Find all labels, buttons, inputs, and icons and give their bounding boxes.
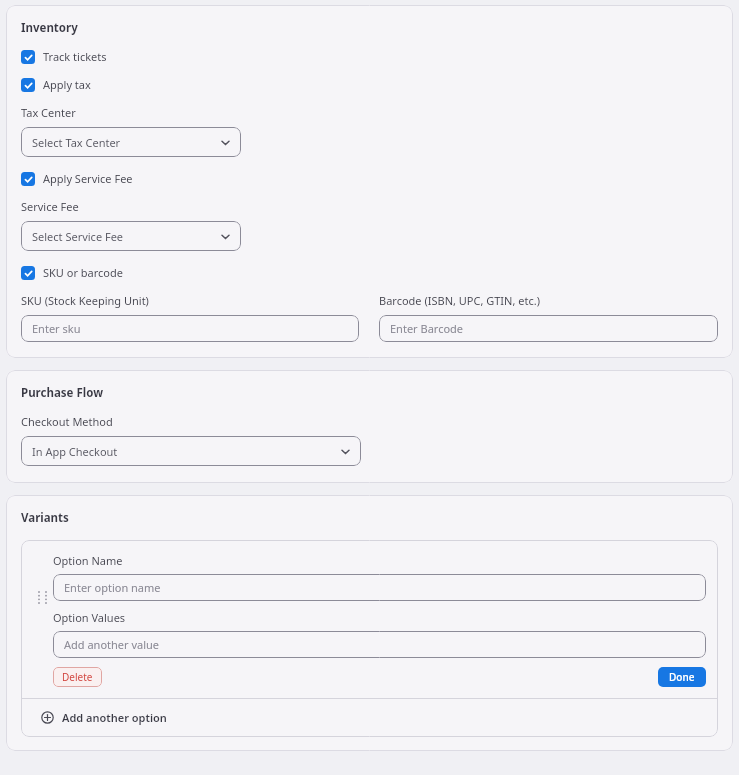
button[interactable]: Apply tax — [21, 75, 91, 94]
staticText: Barcode (ISBN, UPC, GTIN, etc.) — [379, 293, 540, 308]
staticText: Apply Service Fee — [43, 171, 133, 186]
staticText: Option Values — [53, 610, 126, 625]
staticText: Service Fee — [21, 199, 79, 214]
staticText: Tax Center — [21, 105, 76, 120]
staticText: SKU or barcode — [43, 265, 123, 280]
staticText: Enter Barcode — [390, 321, 464, 336]
button[interactable]: Enter sku — [21, 315, 359, 342]
button[interactable]: Add another value — [53, 631, 706, 658]
staticText: Option Name — [53, 553, 123, 568]
staticText: Variants — [21, 510, 69, 526]
button[interactable]: Enter Barcode — [379, 315, 718, 342]
button[interactable]: Enter option name — [53, 574, 706, 601]
button[interactable]: SKU or barcode — [21, 263, 123, 282]
staticText: In App Checkout — [32, 444, 340, 459]
staticText: SKU (Stock Keeping Unit) — [21, 293, 149, 308]
staticText: Purchase Flow — [21, 385, 103, 401]
staticText: Inventory — [21, 20, 78, 36]
button[interactable]: In App Checkout — [21, 436, 361, 466]
staticText: Enter option name — [64, 580, 161, 595]
button[interactable]: Add another option — [21, 699, 718, 737]
staticText: Add another option — [62, 710, 167, 725]
staticText: Select Service Fee — [32, 229, 220, 244]
staticText: Delete — [62, 670, 93, 684]
button[interactable]: Select Service Fee — [21, 221, 241, 251]
staticText: Enter sku — [32, 321, 81, 336]
staticText: Track tickets — [43, 49, 107, 64]
button[interactable]: Apply Service Fee — [21, 169, 133, 188]
staticText: Add another value — [64, 637, 160, 652]
staticText: Checkout Method — [21, 414, 113, 429]
staticText: Apply tax — [43, 77, 91, 92]
button[interactable]: Done — [658, 667, 706, 687]
staticText: Select Tax Center — [32, 135, 220, 150]
button[interactable]: Track tickets — [21, 47, 107, 66]
button[interactable]: Select Tax Center — [21, 127, 241, 157]
other: Reorder option — [39, 592, 46, 603]
staticText: Done — [669, 670, 695, 684]
button[interactable]: Delete — [53, 667, 102, 687]
